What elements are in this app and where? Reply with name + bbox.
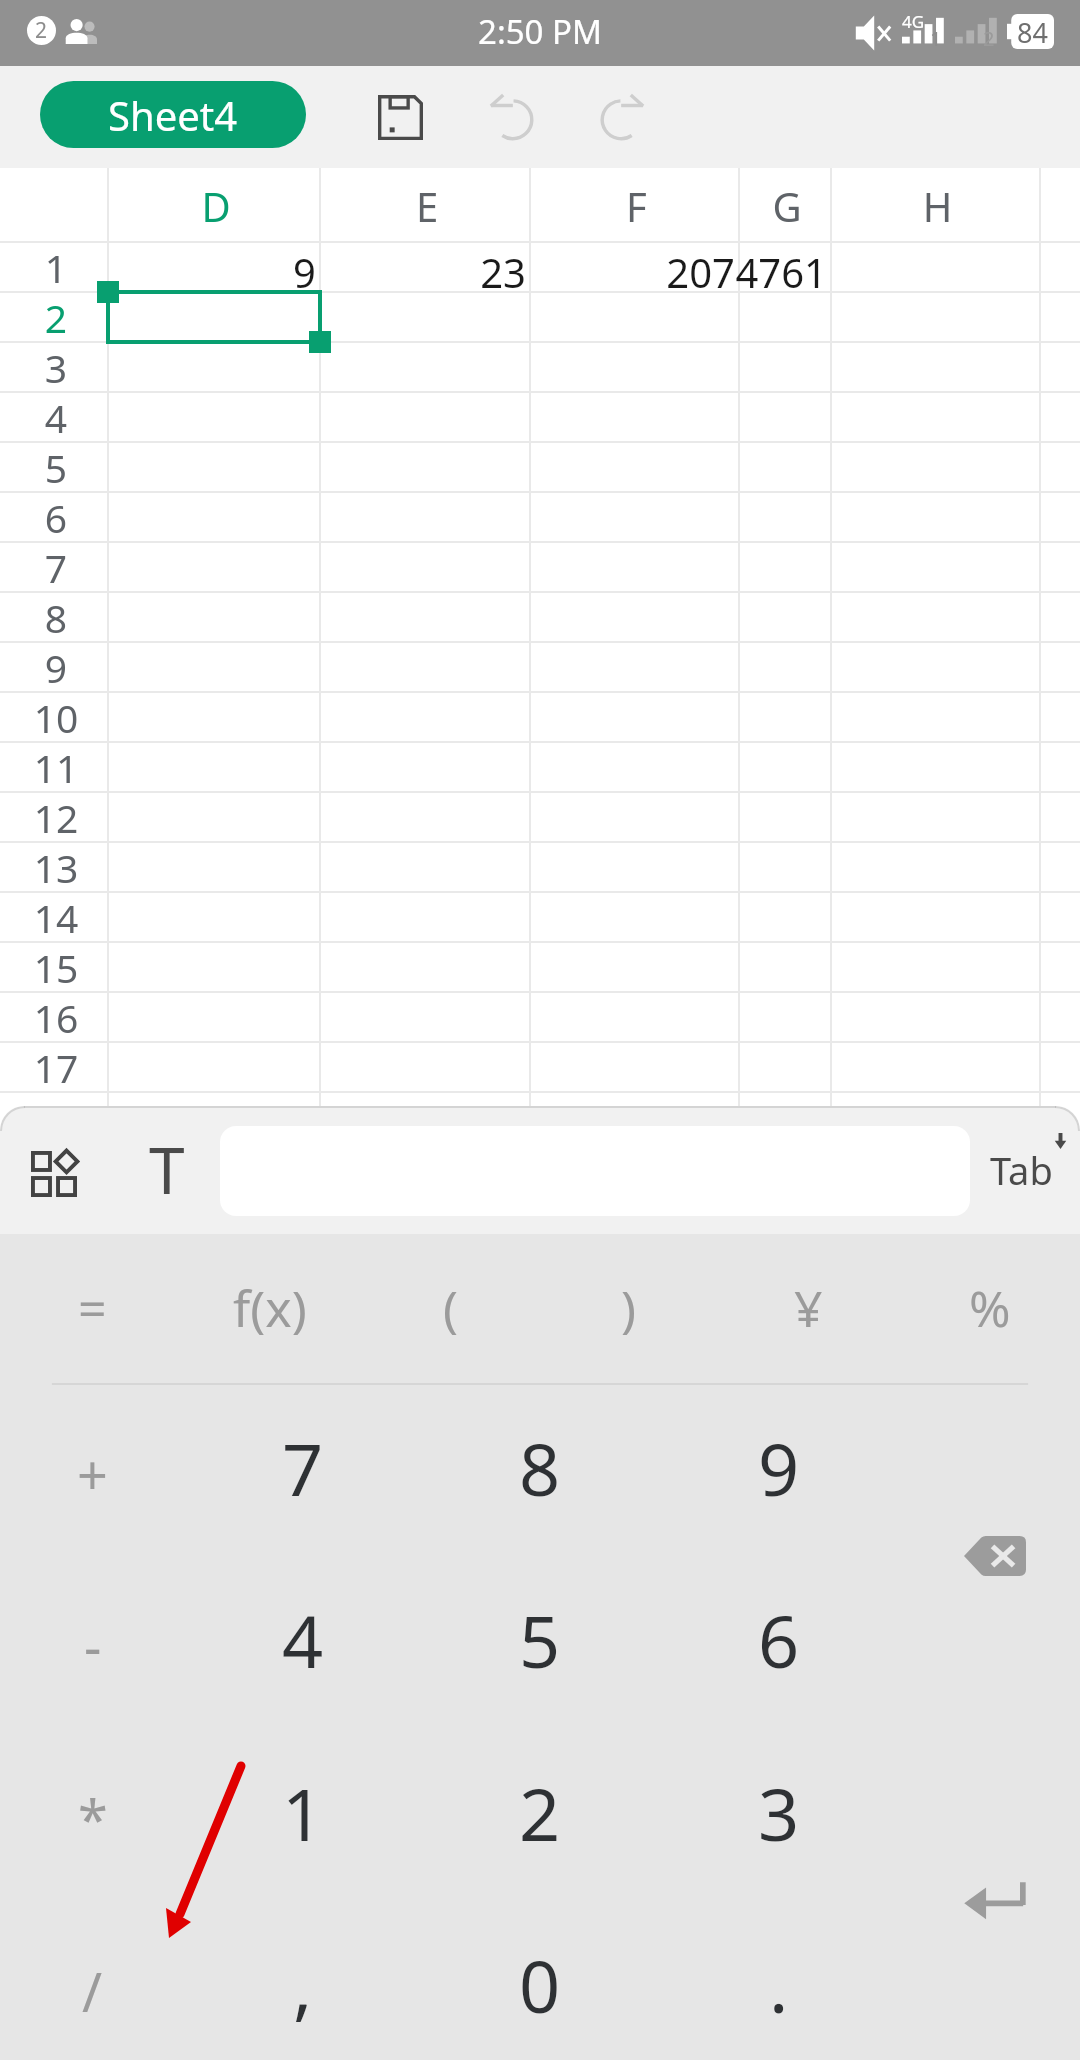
button[interactable]: Undo — [468, 73, 556, 161]
button[interactable]: ¥ — [719, 1234, 897, 1382]
staticText: 4 — [282, 1591, 324, 1689]
staticText: / — [82, 1954, 103, 2028]
staticText: 23 — [286, 245, 526, 299]
staticText: 6 — [758, 1591, 800, 1689]
button[interactable]: / — [0, 1902, 185, 2060]
staticText: 5 — [519, 1591, 561, 1689]
button[interactable]: f(x) — [181, 1234, 359, 1382]
staticText: F — [532, 179, 741, 233]
staticText: 2 — [35, 16, 48, 45]
button[interactable]: 6 — [661, 1557, 897, 1729]
staticText: 5 — [0, 441, 118, 494]
button[interactable]: ) — [539, 1234, 717, 1382]
staticText: 4G — [902, 10, 925, 33]
staticText: 12 — [0, 791, 118, 844]
button[interactable]: . — [661, 1902, 897, 2060]
staticText: 3 — [0, 341, 118, 394]
staticText: 8 — [0, 591, 118, 644]
staticText: 1 — [0, 241, 118, 294]
button[interactable]: ( — [361, 1234, 539, 1382]
button[interactable]: Enter — [940, 1868, 1050, 1932]
button[interactable]: 4 — [185, 1557, 421, 1729]
staticText: Tab — [990, 1144, 1053, 1196]
button[interactable]: Backspace — [940, 1524, 1050, 1588]
staticText: 1 — [930, 25, 942, 52]
staticText: 8 — [519, 1419, 561, 1517]
staticText: , — [293, 1936, 313, 2034]
staticText: 2 — [983, 25, 995, 52]
staticText: 9 — [758, 1419, 800, 1517]
staticText: H — [833, 179, 1042, 233]
button[interactable]: + — [0, 1385, 185, 1557]
staticText: 11 — [0, 741, 118, 794]
button[interactable]: Text format — [112, 1106, 220, 1234]
staticText: 207 — [495, 245, 735, 299]
button[interactable]: * — [0, 1730, 185, 1902]
staticText: 2:50 PM — [478, 9, 602, 54]
button[interactable]: 9 — [661, 1385, 897, 1557]
staticText: 10 — [0, 691, 118, 744]
staticText: f(x) — [233, 1274, 307, 1342]
staticText: - — [84, 1609, 102, 1683]
button[interactable]: 0 — [422, 1902, 658, 2060]
staticText: 1 — [282, 1764, 324, 1862]
staticText: ( — [443, 1274, 458, 1342]
button[interactable]: Tab — [970, 1106, 1080, 1234]
staticText: 0 — [519, 1936, 561, 2034]
staticText: = — [78, 1274, 107, 1342]
staticText: * — [78, 1782, 108, 1856]
staticText: 16 — [0, 991, 118, 1044]
staticText: 4761 — [587, 245, 827, 299]
staticText: 9 — [0, 641, 118, 694]
staticText: 19 — [0, 1141, 118, 1194]
button[interactable]: Insert object — [0, 1106, 112, 1234]
staticText: 6 — [0, 491, 118, 544]
staticText: 18 — [0, 1091, 118, 1144]
staticText: 84 — [1017, 14, 1048, 49]
staticText: 7 — [282, 1419, 324, 1517]
staticText: 3 — [758, 1764, 800, 1862]
button[interactable]: - — [0, 1557, 185, 1729]
button[interactable]: 1 — [185, 1730, 421, 1902]
button[interactable]: Redo — [578, 73, 666, 161]
staticText: 2 — [519, 1764, 561, 1862]
staticText: D — [110, 179, 322, 233]
staticText: . — [769, 1936, 789, 2034]
staticText: E — [322, 179, 532, 233]
staticText: Sheet4 — [108, 88, 238, 142]
staticText: 4 — [0, 391, 118, 444]
button[interactable]: 3 — [661, 1730, 897, 1902]
button[interactable]: Save — [356, 73, 444, 161]
button[interactable]: , — [185, 1902, 421, 2060]
staticText: 7 — [0, 541, 118, 594]
button[interactable]: = — [3, 1234, 181, 1382]
staticText: 2 — [0, 291, 118, 344]
staticText: % — [969, 1274, 1011, 1342]
staticText: 13 — [0, 841, 118, 894]
button[interactable]: 5 — [422, 1557, 658, 1729]
staticText: 17 — [0, 1041, 118, 1094]
button[interactable]: 2 — [422, 1730, 658, 1902]
button[interactable]: % — [901, 1234, 1079, 1382]
staticText: 14 — [0, 891, 118, 944]
staticText: ) — [621, 1274, 636, 1342]
staticText: T — [149, 1126, 185, 1213]
staticText: 15 — [0, 941, 118, 994]
staticText: G — [741, 179, 833, 233]
button[interactable]: 8 — [422, 1385, 658, 1557]
staticText: ¥ — [794, 1274, 823, 1342]
button[interactable]: 7 — [185, 1385, 421, 1557]
staticText: 9 — [76, 245, 316, 299]
button[interactable]: Sheet4 — [40, 81, 306, 148]
staticText: + — [77, 1437, 108, 1511]
